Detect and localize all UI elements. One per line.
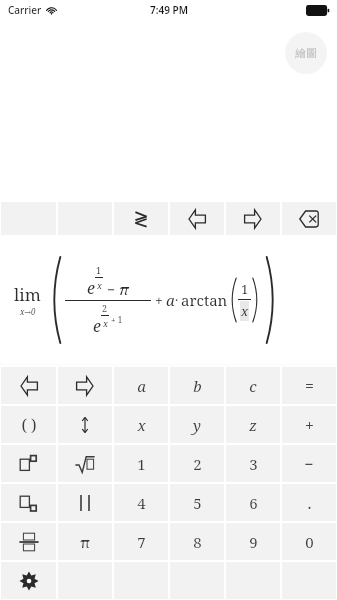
staticText: 2 <box>193 454 202 474</box>
button[interactable]: Square root <box>58 445 112 482</box>
button[interactable]: Move left <box>170 202 224 235</box>
button[interactable]: 5 <box>170 484 224 521</box>
staticText: a <box>137 376 146 396</box>
button[interactable]: x <box>114 406 168 443</box>
staticText: 7 <box>137 532 146 552</box>
button[interactable]: y <box>170 406 224 443</box>
button[interactable]: Settings <box>1 562 56 599</box>
staticText: + <box>155 291 163 310</box>
staticText: e <box>93 315 101 337</box>
button[interactable]: + <box>282 406 336 443</box>
button[interactable]: 2 <box>170 445 224 482</box>
staticText: a <box>166 290 175 310</box>
staticText: 3 <box>249 454 258 474</box>
button[interactable]: b <box>170 367 224 404</box>
button[interactable]: Absolute value <box>58 484 112 521</box>
button[interactable]: Move up or down <box>58 406 112 443</box>
staticText: e <box>87 277 95 299</box>
staticText: 繪圖 <box>295 46 317 60</box>
staticText: z <box>249 415 257 435</box>
button[interactable]: − <box>282 445 336 482</box>
staticText: + <box>305 414 314 436</box>
button[interactable]: = <box>282 367 336 404</box>
staticText: 5 <box>193 493 202 513</box>
staticText: π <box>80 532 90 552</box>
staticText: x <box>97 279 102 291</box>
button[interactable]: 8 <box>170 523 224 560</box>
button[interactable]: 1 <box>114 445 168 482</box>
staticText: x <box>241 302 249 320</box>
staticText: x <box>137 415 146 435</box>
staticText: − <box>304 453 314 475</box>
staticText: x <box>103 317 108 329</box>
button[interactable]: 4 <box>114 484 168 521</box>
staticText: 8 <box>193 532 202 552</box>
staticText: . <box>307 492 312 514</box>
button[interactable]: c <box>226 367 280 404</box>
staticText: ( ) <box>21 414 37 436</box>
staticText: 1 <box>137 454 146 474</box>
staticText: = <box>305 375 314 397</box>
button[interactable]: . <box>282 484 336 521</box>
staticText: x→0 <box>20 306 36 317</box>
button[interactable]: Relations <box>114 202 168 235</box>
staticText: 7:49 PM <box>150 3 188 17</box>
button[interactable]: z <box>226 406 280 443</box>
button[interactable]: π <box>58 523 112 560</box>
button[interactable]: 9 <box>226 523 280 560</box>
button[interactable]: Move right <box>226 202 280 235</box>
button[interactable]: 3 <box>226 445 280 482</box>
button[interactable]: Cursor left <box>1 367 56 404</box>
staticText: − <box>107 280 116 299</box>
staticText: b <box>193 376 202 396</box>
staticText: 4 <box>137 493 146 513</box>
staticText: + 1 <box>109 314 123 325</box>
staticText: c <box>249 376 257 396</box>
button[interactable]: 0 <box>282 523 336 560</box>
button[interactable]: Cursor right <box>58 367 112 404</box>
staticText: y <box>193 415 201 435</box>
button[interactable]: a <box>114 367 168 404</box>
button[interactable]: 7 <box>114 523 168 560</box>
button[interactable]: Backspace <box>282 202 336 235</box>
button[interactable]: Subscript <box>1 484 56 521</box>
staticText: π <box>119 279 129 299</box>
button[interactable]: ( ) <box>1 406 56 443</box>
staticText: 1 <box>96 264 102 276</box>
button[interactable]: Fraction <box>1 523 56 560</box>
button[interactable]: 繪圖 <box>285 32 327 74</box>
staticText: 1 <box>241 280 249 298</box>
staticText: 2 <box>102 302 108 314</box>
staticText: 6 <box>249 493 258 513</box>
staticText: lim <box>14 283 41 306</box>
staticText: Carrier <box>8 3 42 17</box>
staticText: 0 <box>305 532 314 552</box>
staticText: 9 <box>249 532 258 552</box>
staticText: arctan <box>181 290 228 310</box>
staticText: · <box>175 291 179 309</box>
button[interactable]: 6 <box>226 484 280 521</box>
button[interactable]: Power <box>1 445 56 482</box>
